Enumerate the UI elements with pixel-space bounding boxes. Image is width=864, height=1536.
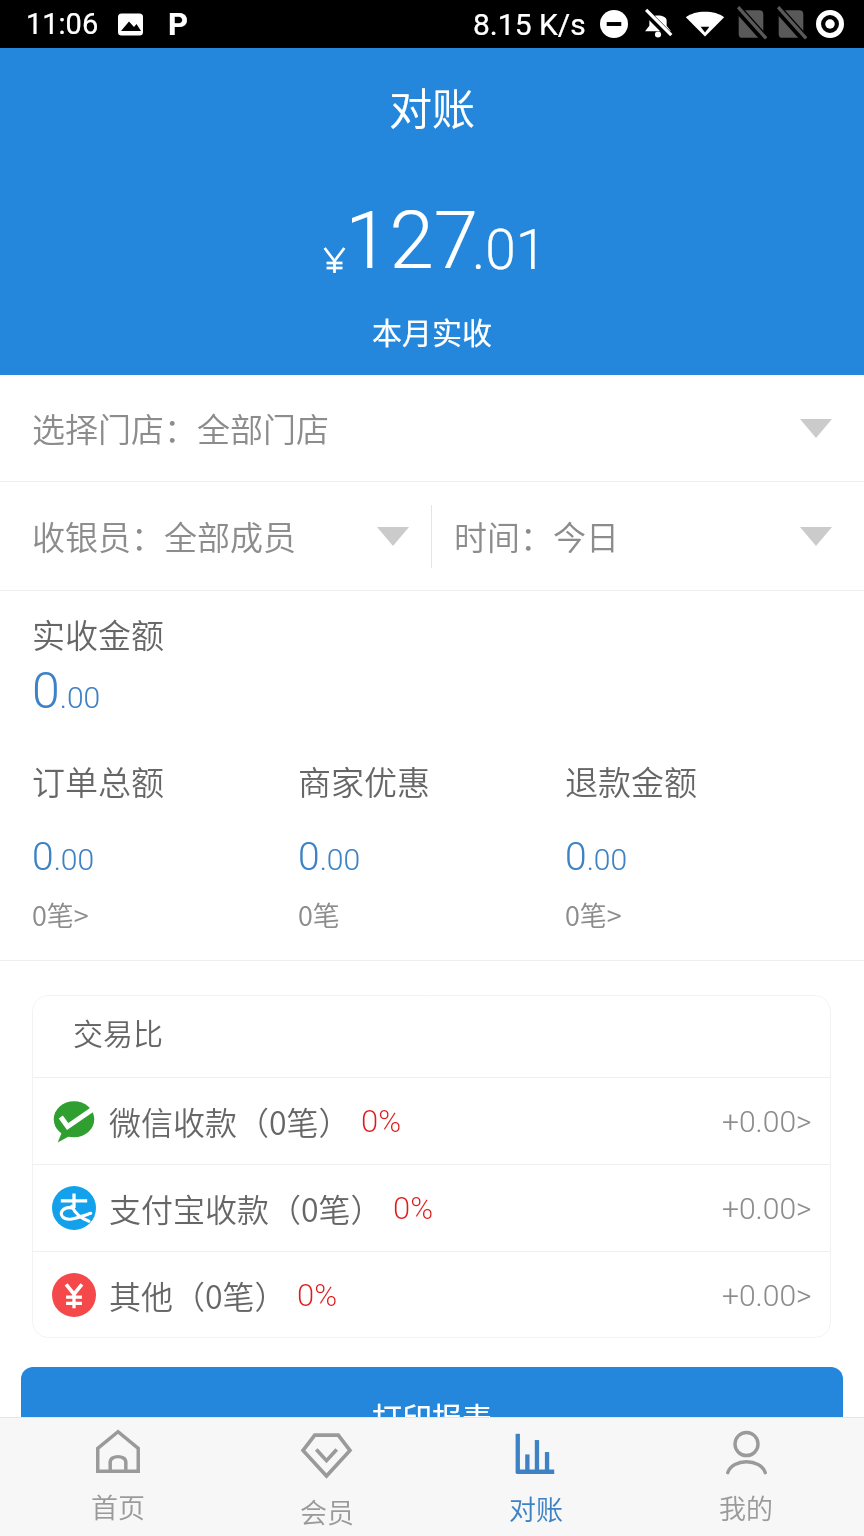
button[interactable]: Home [13, 1418, 222, 1536]
staticText: .01 [472, 218, 547, 282]
staticText: 0笔 [298, 895, 340, 934]
button[interactable]: Profile [641, 1418, 851, 1536]
other: Profile [723, 1429, 770, 1476]
staticText: +0.00> [722, 1278, 812, 1313]
staticText: 127 [345, 194, 479, 288]
staticText: 0% [297, 1277, 338, 1313]
staticText: +0.00> [722, 1191, 812, 1226]
other: Reconcile [512, 1429, 560, 1477]
staticText: 商家优惠 [298, 757, 430, 805]
staticText: 打印报表 [372, 1394, 492, 1437]
staticText: P [168, 6, 188, 42]
staticText: 0.00 [298, 834, 361, 880]
staticText: 对账 [389, 75, 475, 137]
staticText: +0.00> [722, 1104, 812, 1139]
button[interactable]: 微信收款（0笔） [32, 1078, 831, 1164]
staticText: 会员 [300, 1492, 354, 1531]
staticText: 微信收款（0笔） [109, 1098, 351, 1144]
staticText: 0笔> [32, 895, 89, 934]
button[interactable]: Reconcile [431, 1418, 641, 1536]
staticText: 0.00 [565, 834, 628, 880]
staticText: 11:06 [26, 7, 99, 41]
button[interactable]: 时间：今日 [432, 512, 864, 560]
button[interactable]: 订单总额 [32, 757, 298, 934]
staticText: 我的 [719, 1488, 773, 1527]
staticText: 0笔> [565, 895, 622, 934]
staticText: 0% [393, 1190, 434, 1226]
staticText: 其他（0笔） [109, 1272, 287, 1318]
button[interactable]: 其他（0笔） [32, 1252, 831, 1338]
staticText: 收银员：全部成员 [32, 512, 296, 560]
staticText: 订单总额 [32, 757, 164, 805]
staticText: 首页 [91, 1487, 145, 1526]
staticText: 本月实收 [372, 309, 492, 352]
staticText: 8.15 K/s [473, 7, 586, 42]
staticText: 时间：今日 [454, 512, 619, 560]
staticText: 交易比 [73, 1010, 163, 1053]
staticText: 实收金额 [32, 610, 164, 658]
button[interactable]: Members [222, 1418, 431, 1536]
staticText: 选择门店：全部门店 [32, 404, 329, 452]
staticText: 0% [361, 1103, 402, 1139]
button[interactable]: 选择门店：全部门店 [0, 375, 864, 481]
button[interactable]: 收银员：全部成员 [0, 512, 431, 560]
staticText: 支付宝收款（0笔） [109, 1185, 383, 1231]
button[interactable]: 支付宝收款（0笔） [32, 1165, 831, 1251]
other: Home [95, 1429, 141, 1475]
staticText: 0.00 [32, 834, 95, 880]
staticText: 退款金额 [565, 757, 697, 805]
button[interactable]: 商家优惠 [298, 757, 565, 934]
staticText: 对账 [509, 1489, 563, 1528]
staticText: 0.00 [32, 662, 101, 721]
button[interactable]: 打印报表 [21, 1367, 843, 1463]
other: Members [301, 1429, 352, 1480]
button[interactable]: 退款金额 [565, 757, 832, 934]
